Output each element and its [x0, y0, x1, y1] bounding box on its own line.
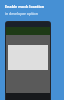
staticText: Enable mock location: [5, 4, 45, 9]
staticText: in developer option: [5, 11, 38, 16]
